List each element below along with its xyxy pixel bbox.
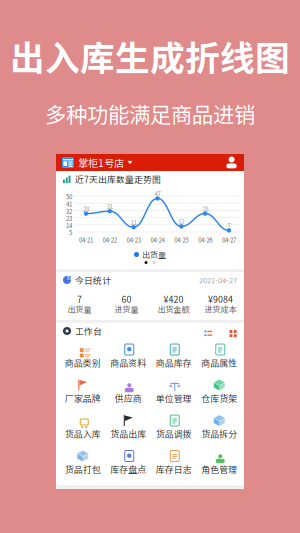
staticText: 2021-04-27 <box>199 275 237 285</box>
button[interactable]: 商品类别 <box>60 339 105 374</box>
button[interactable]: Grid view <box>225 325 237 337</box>
staticText: 04-22 <box>103 235 117 244</box>
staticText: 货品入库 <box>65 427 101 440</box>
button[interactable]: 库存盘点 <box>105 445 151 481</box>
staticText: 进货成本 <box>204 303 236 315</box>
staticText: 库存盘点 <box>110 462 146 475</box>
staticText: 04-21 <box>79 235 93 244</box>
button[interactable]: 商品资料 <box>105 339 151 374</box>
staticText: 12 <box>178 217 184 226</box>
staticText: 32 <box>66 207 72 215</box>
button[interactable]: Profile <box>225 155 238 169</box>
staticText: 近7天出库数量走势图 <box>75 173 161 185</box>
staticText: 14 <box>66 221 72 230</box>
staticText: 商品库存 <box>156 356 192 369</box>
staticText: 7 <box>77 293 82 305</box>
staticText: 今日统计 <box>75 274 111 286</box>
staticText: 47 <box>154 189 160 198</box>
staticText: 工作台 <box>75 325 102 337</box>
button[interactable]: 货品拆分 <box>196 410 242 445</box>
button[interactable]: 角色管理 <box>196 445 242 481</box>
staticText: 出货量 <box>67 303 91 315</box>
button[interactable]: 货品入库 <box>60 410 105 445</box>
button[interactable]: 商品库存 <box>151 339 196 374</box>
button[interactable]: 厂家品牌 <box>60 374 105 410</box>
staticText: ¥420 <box>163 293 183 305</box>
staticText: 货品拆分 <box>201 427 237 440</box>
staticText: 商品资料 <box>110 356 146 369</box>
staticText: 仓库货架 <box>201 391 237 404</box>
staticText: 出货金额 <box>157 303 189 315</box>
button[interactable]: 仓库货架 <box>196 374 242 410</box>
staticText: 单位管理 <box>156 391 192 404</box>
staticText: 厂家品牌 <box>65 391 101 404</box>
staticText: 23 <box>66 214 72 223</box>
staticText: 5 <box>69 228 72 237</box>
button[interactable]: 货品打包 <box>60 445 105 481</box>
staticText: 出入库生成折线图 <box>10 31 290 81</box>
staticText: 7 <box>227 221 230 230</box>
staticText: 04-26 <box>198 235 212 244</box>
staticText: 掌柜1号店 <box>78 155 124 170</box>
staticText: 50 <box>66 192 72 201</box>
staticText: 货品打包 <box>65 462 101 475</box>
button[interactable]: 掌柜1号店 <box>62 155 132 170</box>
button[interactable]: List view <box>201 325 213 337</box>
staticText: ¥9084 <box>208 293 233 305</box>
staticText: 04-24 <box>150 235 164 244</box>
staticText: 货品调拨 <box>156 427 192 440</box>
staticText: 商品属性 <box>201 356 237 369</box>
staticText: 60 <box>121 293 131 305</box>
staticText: 04-27 <box>222 235 236 244</box>
button[interactable]: 商品属性 <box>196 339 242 374</box>
staticText: 31 <box>107 202 113 211</box>
button[interactable]: 库存日志 <box>151 445 196 481</box>
staticText: 出货量 <box>142 249 166 260</box>
staticText: 11 <box>131 218 137 227</box>
staticText: 商品类别 <box>65 356 101 369</box>
staticText: 28 <box>202 204 208 213</box>
staticText: 货品出库 <box>110 427 146 440</box>
staticText: 28 <box>83 204 89 213</box>
staticText: 角色管理 <box>201 462 237 475</box>
staticText: 库存日志 <box>156 462 192 475</box>
button[interactable]: 单位管理 <box>151 374 196 410</box>
staticText: 多种功能满足商品进销 <box>45 98 255 129</box>
button[interactable]: 货品调拨 <box>151 410 196 445</box>
staticText: 供应商 <box>115 391 142 404</box>
button[interactable]: 供应商 <box>105 374 151 410</box>
staticText: 04-25 <box>174 235 188 244</box>
button[interactable]: 货品出库 <box>105 410 151 445</box>
staticText: 04-23 <box>127 235 141 244</box>
staticText: 41 <box>66 199 72 208</box>
staticText: 进货量 <box>114 303 138 315</box>
